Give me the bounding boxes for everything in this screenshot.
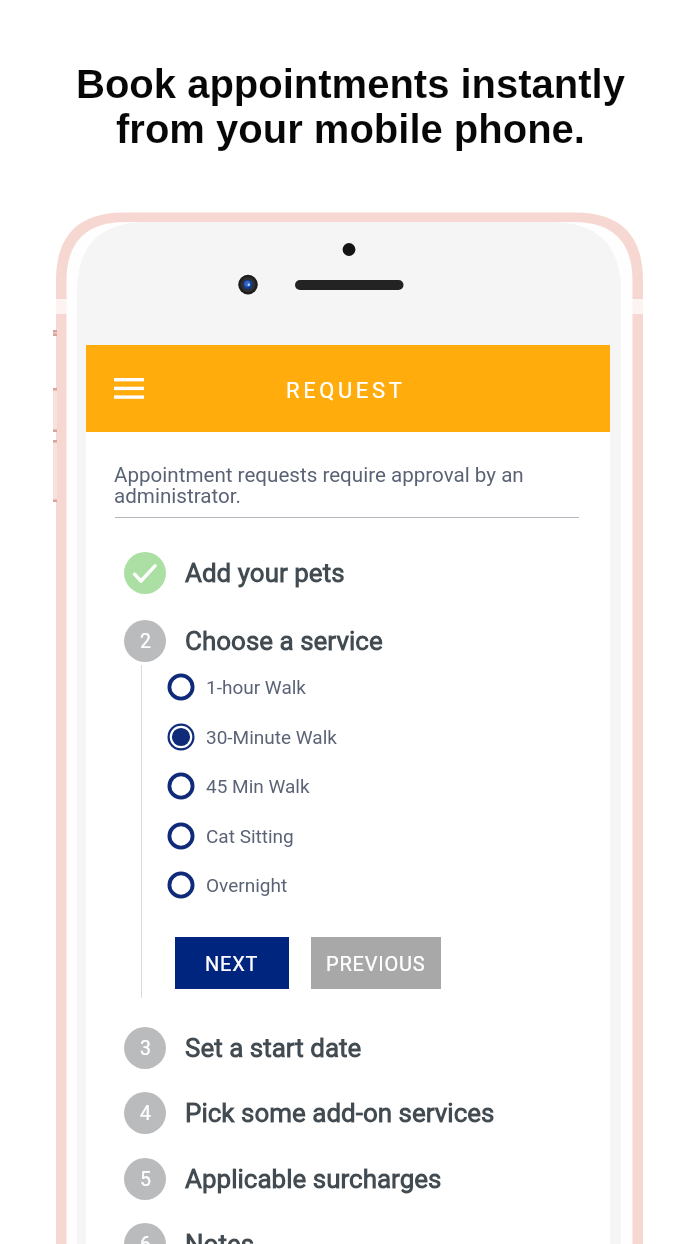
button[interactable]: Overnight: [167, 871, 467, 899]
button[interactable]: Cat Sitting: [167, 822, 467, 850]
staticText: 4: [140, 1102, 151, 1125]
button[interactable]: 4: [124, 1092, 594, 1134]
staticText: 45 Min Walk: [206, 775, 310, 797]
button[interactable]: 45 Min Walk: [167, 772, 467, 800]
button[interactable]: 5: [124, 1158, 594, 1200]
button[interactable]: Open navigation menu: [107, 365, 153, 411]
staticText: NEXT: [205, 952, 259, 975]
button[interactable]: 6: [124, 1223, 594, 1244]
staticText: 3: [140, 1037, 151, 1060]
staticText: Applicable surcharges: [185, 1164, 442, 1194]
staticText: Notes: [185, 1229, 255, 1244]
button[interactable]: 3: [124, 1027, 594, 1069]
staticText: 30-Minute Walk: [206, 726, 337, 748]
button[interactable]: NEXT: [175, 937, 289, 989]
staticText: Overnight: [206, 874, 288, 896]
button[interactable]: 30-Minute Walk: [167, 723, 467, 751]
button[interactable]: 1-hour Walk: [167, 673, 467, 701]
staticText: Pick some add-on services: [185, 1098, 495, 1128]
staticText: Cat Sitting: [206, 825, 294, 847]
staticText: 5: [140, 1168, 151, 1191]
staticText: Set a start date: [185, 1033, 362, 1063]
staticText: Appointment requests require approval by…: [114, 463, 524, 508]
button[interactable]: PREVIOUS: [311, 937, 441, 989]
staticText: Choose a service: [185, 626, 383, 656]
staticText: 2: [140, 630, 151, 653]
staticText: PREVIOUS: [326, 952, 426, 975]
button[interactable]: Add your pets: [124, 552, 594, 594]
staticText: REQUEST: [286, 378, 406, 404]
staticText: Add your pets: [185, 558, 345, 588]
staticText: 1-hour Walk: [206, 676, 306, 698]
staticText: Book appointments instantly from your mo…: [76, 62, 625, 152]
button[interactable]: 2: [124, 620, 594, 662]
staticText: 6: [140, 1233, 151, 1244]
